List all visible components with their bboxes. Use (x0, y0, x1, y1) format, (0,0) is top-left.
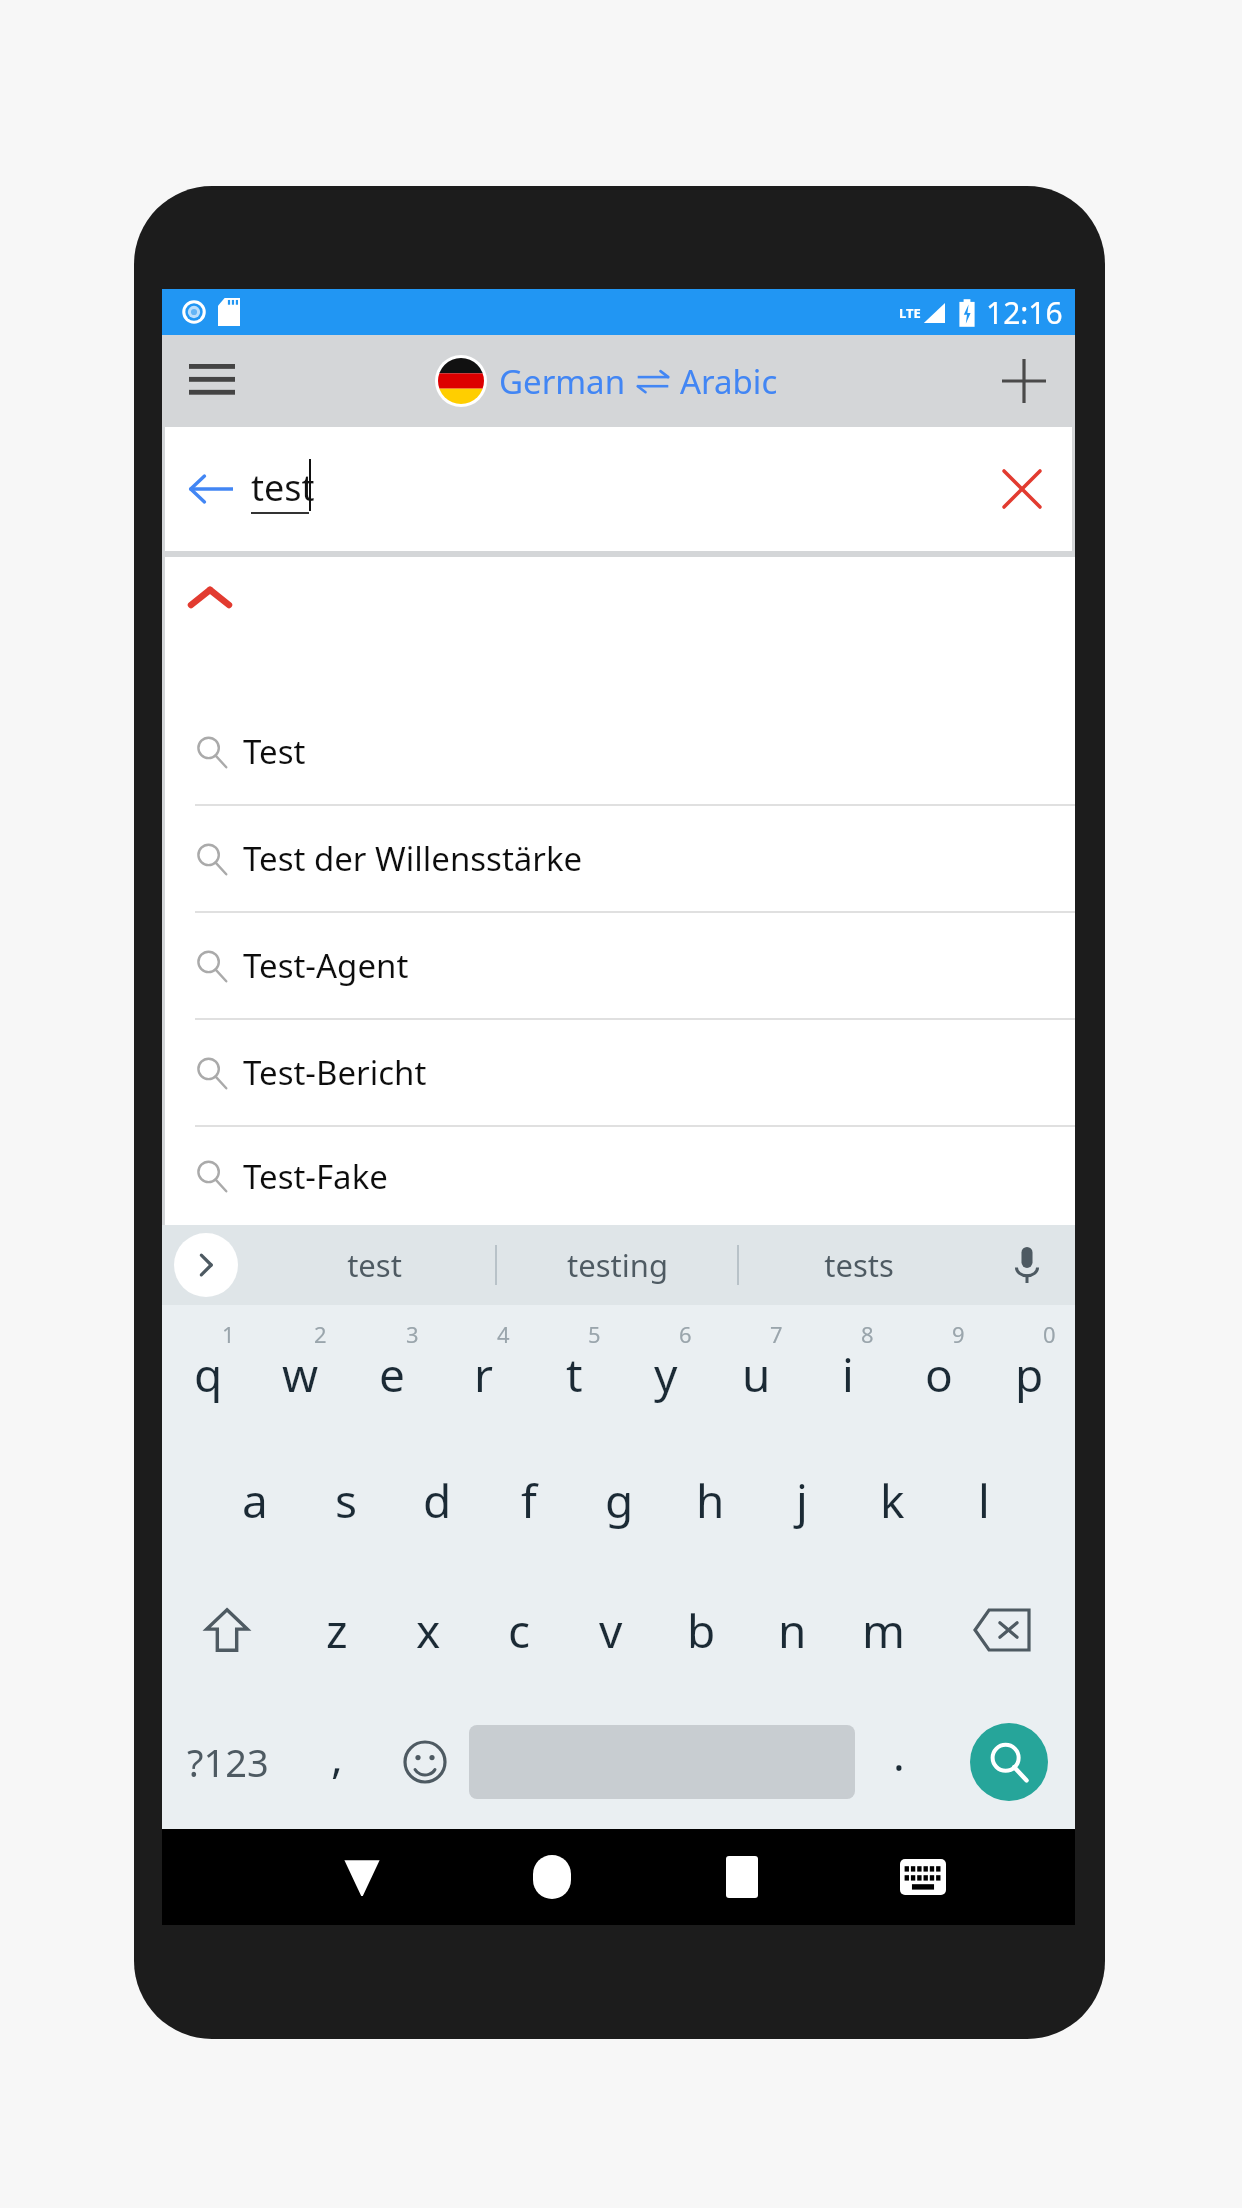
button[interactable]: . (855, 1695, 943, 1829)
staticText: f (521, 1469, 537, 1532)
staticText: Test-Agent (243, 943, 409, 988)
staticText: ?123 (187, 1736, 269, 1788)
button[interactable]: h (665, 1435, 756, 1565)
button[interactable]: x (383, 1565, 474, 1695)
button[interactable]: d (392, 1435, 483, 1565)
staticText: Test der Willensstärke (243, 836, 583, 881)
staticText: i (842, 1343, 854, 1406)
button[interactable]: b (656, 1565, 747, 1695)
button[interactable]: g (574, 1435, 665, 1565)
staticText: s (335, 1469, 358, 1532)
button[interactable]: w (254, 1305, 346, 1435)
staticText: Arabic (680, 359, 778, 404)
button[interactable]: t (529, 1305, 620, 1435)
staticText: y (654, 1343, 678, 1406)
button[interactable]: Back (267, 1829, 457, 1925)
staticText: 9 (952, 1319, 965, 1349)
button[interactable]: q (162, 1305, 254, 1435)
button[interactable]: Backspace (929, 1565, 1075, 1695)
button[interactable]: Test-Agent (165, 911, 1075, 1018)
button[interactable]: m (838, 1565, 929, 1695)
staticText: c (508, 1599, 531, 1662)
button[interactable]: k (847, 1435, 938, 1565)
staticText: Test-Fake (243, 1154, 388, 1199)
button[interactable]: i (802, 1305, 893, 1435)
staticText: d (423, 1469, 452, 1532)
staticText: b (687, 1599, 716, 1662)
staticText: l (978, 1469, 990, 1532)
button[interactable]: testing (497, 1225, 737, 1305)
staticText: g (605, 1469, 634, 1532)
other: Back (187, 472, 233, 506)
button[interactable]: Back (165, 427, 1072, 551)
staticText: testing (567, 1244, 668, 1286)
button[interactable]: l (938, 1435, 1029, 1565)
staticText: 8 (861, 1319, 874, 1349)
staticText: n (778, 1599, 807, 1662)
staticText: , (331, 1726, 343, 1786)
button[interactable]: Test-Fake (165, 1125, 1075, 1225)
staticText: 0 (1043, 1319, 1056, 1349)
staticText: a (242, 1469, 268, 1532)
button[interactable]: Shift (162, 1565, 291, 1695)
staticText: j (796, 1469, 808, 1532)
button[interactable]: c (474, 1565, 565, 1695)
button[interactable]: Add (989, 346, 1059, 416)
staticText: . (893, 1724, 905, 1784)
button[interactable]: test (254, 1225, 495, 1305)
button[interactable]: r (438, 1305, 529, 1435)
button[interactable]: Recent apps (647, 1829, 837, 1925)
button[interactable]: Voice input (999, 1237, 1055, 1293)
button[interactable]: Search (970, 1723, 1048, 1801)
button[interactable]: u (711, 1305, 802, 1435)
button[interactable]: f (483, 1435, 574, 1565)
staticText: q (194, 1343, 223, 1406)
button[interactable]: p (984, 1305, 1075, 1435)
staticText: v (599, 1599, 623, 1662)
staticText: 6 (679, 1319, 692, 1349)
button[interactable]: s (301, 1435, 392, 1565)
button[interactable]: Emoji (381, 1695, 469, 1829)
button[interactable]: Open menu (176, 345, 248, 417)
staticText: k (880, 1469, 905, 1532)
staticText: 4 (497, 1319, 510, 1349)
staticText: 12:16 (986, 292, 1063, 333)
staticText: LTE (899, 304, 921, 322)
staticText: m (862, 1599, 906, 1662)
button[interactable]: n (747, 1565, 838, 1695)
staticText: 2 (314, 1319, 327, 1349)
button[interactable]: Collapse (165, 557, 1075, 653)
button[interactable]: Clear (994, 461, 1050, 517)
button[interactable]: , (293, 1695, 381, 1829)
staticText: 5 (588, 1319, 601, 1349)
staticText: Test (243, 729, 306, 774)
staticText: 3 (406, 1319, 419, 1349)
button[interactable]: a (209, 1435, 301, 1565)
staticText: e (379, 1343, 405, 1406)
button[interactable]: Home (457, 1829, 647, 1925)
staticText: h (696, 1469, 725, 1532)
staticText: z (326, 1599, 348, 1662)
staticText: u (742, 1343, 771, 1406)
button[interactable]: German (435, 355, 778, 407)
staticText: 1 (222, 1319, 235, 1349)
staticText: German (499, 359, 626, 404)
button[interactable]: Test der Willensstärke (165, 804, 1075, 911)
button[interactable]: z (291, 1565, 383, 1695)
button[interactable]: tests (739, 1225, 979, 1305)
button[interactable]: More suggestions (174, 1233, 238, 1297)
staticText: p (1015, 1343, 1044, 1406)
button[interactable]: Test-Bericht (165, 1018, 1075, 1125)
button[interactable]: y (620, 1305, 711, 1435)
staticText: 7 (770, 1319, 783, 1349)
staticText: test (347, 1244, 402, 1286)
button[interactable]: Hide keyboard (837, 1829, 1008, 1925)
staticText: w (282, 1343, 319, 1406)
button[interactable]: e (346, 1305, 438, 1435)
button[interactable]: Test (165, 699, 1075, 804)
button[interactable]: o (893, 1305, 984, 1435)
button[interactable]: j (756, 1435, 847, 1565)
button[interactable]: v (565, 1565, 656, 1695)
button[interactable]: ?123 (162, 1695, 293, 1829)
